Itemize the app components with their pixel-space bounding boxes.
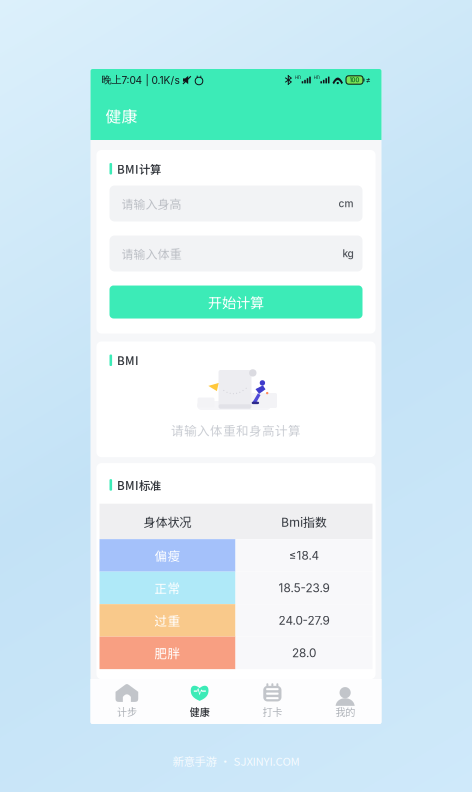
button[interactable]: 计步 — [90, 679, 163, 724]
staticText: Bmi指数 — [281, 513, 327, 530]
button[interactable]: 请输入身高 — [109, 185, 362, 221]
staticText: 正常 — [154, 579, 180, 597]
staticText: 过重 — [154, 611, 180, 629]
staticText: kg — [342, 247, 353, 260]
staticText: 肥胖 — [154, 644, 180, 662]
staticText: 健康 — [105, 104, 137, 127]
staticText: ≠ — [365, 75, 370, 85]
staticText: HD — [314, 75, 320, 80]
staticText: 28.0 — [292, 646, 316, 660]
staticText: 请输入身高 — [121, 195, 181, 212]
staticText: 开始计算 — [208, 292, 264, 312]
button[interactable]: 打卡 — [236, 679, 309, 724]
staticText: 100 — [349, 76, 359, 84]
button[interactable]: 开始计算 — [109, 285, 362, 318]
staticText: HD — [295, 75, 301, 80]
staticText: cm — [338, 197, 353, 210]
button[interactable]: 请输入体重 — [109, 235, 362, 271]
staticText: 18.5-23.9 — [278, 581, 329, 595]
button[interactable]: 健康 — [163, 679, 236, 724]
staticText: 24.0-27.9 — [278, 613, 329, 627]
staticText: BMI标准 — [117, 477, 161, 493]
staticText: 请输入体重 — [121, 245, 181, 262]
staticText: 新意手游 · SJXINYI.COM — [172, 753, 299, 769]
staticText: BMI计算 — [117, 160, 161, 177]
staticText: ≤18.4 — [288, 548, 319, 562]
staticText: 计步 — [117, 704, 137, 719]
staticText: 我的 — [335, 704, 355, 719]
staticText: 偏瘦 — [154, 546, 180, 564]
staticText: 晚上7:04 | 0.1K/s — [101, 74, 179, 86]
staticText: 打卡 — [262, 704, 282, 719]
button[interactable]: 我的 — [309, 679, 382, 724]
staticText: 请输入体重和身高计算 — [171, 421, 301, 439]
staticText: 身体状况 — [143, 513, 191, 530]
staticText: BMI — [117, 352, 139, 368]
staticText: 健康 — [190, 704, 210, 719]
